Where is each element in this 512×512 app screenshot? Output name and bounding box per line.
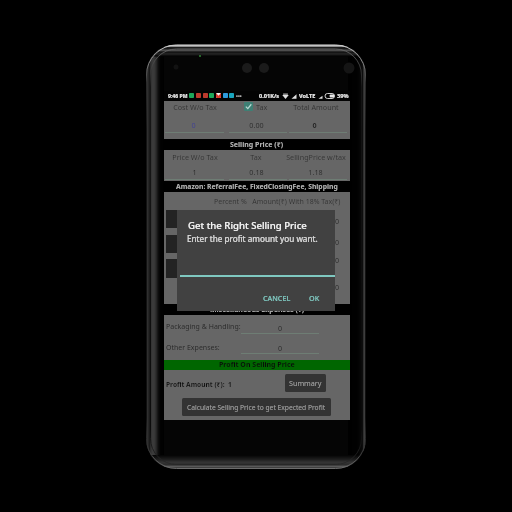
staticText: Other Expenses: — [166, 343, 220, 353]
staticText: Amazon: ReferralFee, FixedClosingFee, Sh… — [176, 182, 338, 191]
staticText: 0 — [335, 282, 340, 292]
staticText: VoLTE — [299, 92, 316, 100]
staticText: 0 — [335, 237, 340, 247]
staticText: Percent % Amount(₹) With 18% Tax(₹) — [214, 197, 341, 207]
button[interactable] — [244, 102, 253, 111]
staticText: 0 — [278, 343, 283, 353]
staticText: Tax — [250, 152, 262, 162]
staticText: 39% — [337, 92, 349, 100]
staticText: Tax — [256, 102, 268, 112]
staticText: SellingPrice w/tax — [286, 152, 346, 162]
staticText: OK — [309, 293, 320, 303]
staticText: 0.00 — [249, 120, 264, 130]
button[interactable]: Summary — [285, 374, 326, 392]
staticText: 0 — [335, 255, 340, 265]
staticText: Summary — [289, 378, 322, 388]
staticText: 0 — [191, 120, 196, 130]
staticText: Profit On Selling Price — [219, 360, 295, 370]
staticText: 1 — [192, 167, 197, 177]
staticText: Get the Right Selling Price — [188, 219, 307, 232]
staticText: 1.18 — [308, 167, 323, 177]
staticText: 9:46 PM — [168, 93, 188, 100]
staticText: Price W/o Tax — [172, 152, 218, 162]
button[interactable]: Calculate Selling Price to get Expected … — [182, 398, 331, 416]
staticText: 0 — [312, 120, 317, 130]
staticText: Selling Price (₹) — [230, 140, 284, 150]
staticText: Calculate Selling Price to get Expected … — [187, 403, 326, 412]
staticText: 0 — [335, 216, 340, 226]
staticText: 0.01K/s — [259, 92, 280, 100]
staticText: Enter the profit amount you want. — [187, 233, 318, 244]
staticText: 0 — [278, 323, 283, 333]
staticText: Profit Amount (₹): 1 — [166, 380, 232, 389]
staticText: Miscellaneous Expenses (₹) — [210, 305, 305, 315]
staticText: Total Amount — [293, 102, 339, 112]
staticText: 0.18 — [249, 167, 264, 177]
button[interactable]: CANCEL — [258, 289, 296, 306]
staticText: ••• — [236, 93, 242, 100]
staticText: Packaging & Handling: — [166, 322, 241, 332]
staticText: Cost W/o Tax — [173, 102, 217, 112]
button[interactable]: OK — [304, 289, 324, 306]
staticText: CANCEL — [263, 293, 291, 303]
